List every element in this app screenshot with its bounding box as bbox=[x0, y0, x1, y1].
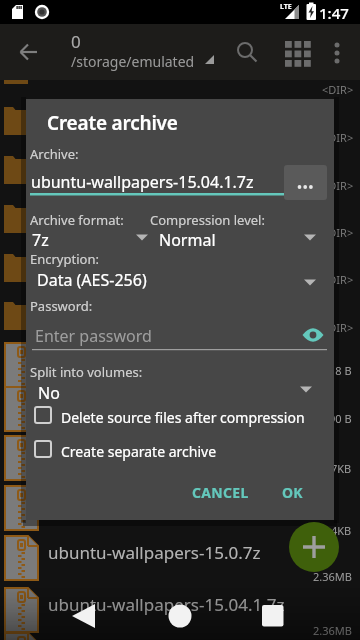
staticText: 1:47 bbox=[319, 3, 349, 23]
staticText: No bbox=[38, 382, 60, 404]
staticText: 2.36MB bbox=[313, 623, 352, 638]
staticText: OK bbox=[282, 483, 303, 502]
staticText: LTE bbox=[280, 2, 292, 12]
staticText: <DIR> bbox=[322, 178, 354, 193]
staticText: 90 B bbox=[329, 411, 352, 426]
button[interactable]: OK bbox=[267, 477, 317, 507]
staticText: 4KB bbox=[331, 523, 352, 538]
staticText: Delete source files after compression bbox=[61, 408, 305, 427]
button[interactable] bbox=[30, 159, 284, 199]
button[interactable] bbox=[156, 219, 328, 247]
button[interactable] bbox=[324, 36, 356, 68]
button[interactable] bbox=[30, 401, 328, 429]
button[interactable] bbox=[248, 596, 296, 640]
button[interactable] bbox=[30, 219, 170, 247]
staticText: Encryption: bbox=[30, 250, 99, 268]
staticText: Create archive bbox=[47, 110, 178, 136]
staticText: Create separate archive bbox=[61, 442, 217, 461]
staticText: <DIR> bbox=[322, 225, 354, 240]
button[interactable] bbox=[30, 260, 328, 288]
staticText: Data (AES-256) bbox=[37, 269, 147, 291]
staticText: 18 B bbox=[329, 363, 352, 378]
button[interactable] bbox=[284, 165, 327, 200]
button[interactable]: CANCEL bbox=[180, 477, 260, 507]
staticText: /storage/emulated bbox=[71, 52, 195, 71]
staticText: <DIR> bbox=[322, 320, 354, 335]
staticText: 7z bbox=[32, 229, 49, 251]
staticText: <DIR> bbox=[322, 82, 354, 97]
staticText: ubuntu-wallpapers-15.04.1.7z bbox=[31, 171, 254, 193]
staticText: 0 bbox=[71, 30, 81, 53]
staticText: Archive: bbox=[30, 145, 79, 163]
staticText: ubuntu-wallpapers-15.04.1.7z bbox=[48, 593, 285, 616]
button[interactable] bbox=[0, 24, 48, 72]
button[interactable] bbox=[30, 435, 328, 463]
button[interactable] bbox=[294, 315, 332, 347]
button[interactable]: /storage/emulated bbox=[71, 52, 195, 71]
staticText: <DIR> bbox=[322, 130, 354, 145]
button[interactable] bbox=[289, 522, 339, 572]
staticText: Normal bbox=[159, 229, 216, 251]
staticText: Compression level: bbox=[150, 211, 265, 229]
staticText: Archive format: bbox=[30, 211, 124, 229]
staticText: 7KB bbox=[331, 461, 352, 476]
staticText: Password: bbox=[30, 297, 93, 315]
button[interactable] bbox=[156, 596, 204, 640]
button[interactable] bbox=[30, 373, 328, 401]
staticText: 2.36MB bbox=[313, 569, 352, 584]
button[interactable] bbox=[232, 36, 264, 68]
staticText: Split into volumes: bbox=[30, 363, 143, 381]
staticText: ubuntu-wallpapers-15.0.7z bbox=[48, 541, 261, 564]
button[interactable] bbox=[280, 36, 312, 68]
staticText: <DIR> bbox=[322, 272, 354, 287]
button[interactable] bbox=[60, 596, 108, 640]
button[interactable] bbox=[30, 315, 292, 347]
staticText: CANCEL bbox=[192, 483, 249, 502]
staticText: Enter password bbox=[35, 325, 152, 347]
